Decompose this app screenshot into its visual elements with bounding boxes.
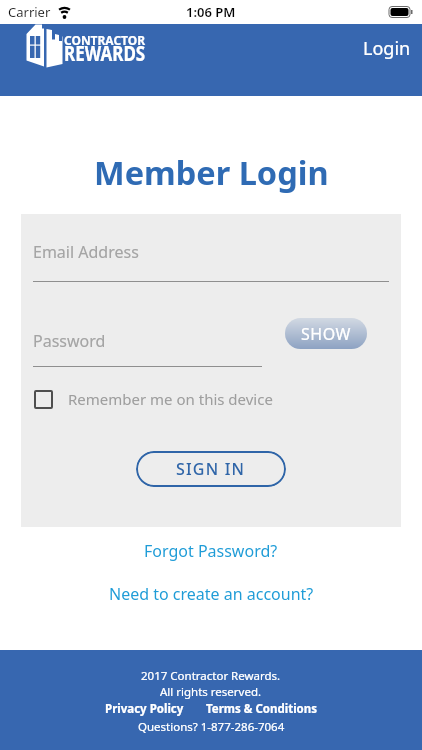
- button[interactable]: Login: [357, 42, 417, 79]
- staticText: 1:06 PM: [186, 3, 236, 21]
- staticText: SIGN IN: [176, 458, 246, 480]
- staticText: SHOW: [301, 323, 351, 345]
- staticText: Remember me on this device: [68, 389, 273, 409]
- button[interactable]: Privacy Policy: [105, 701, 184, 717]
- staticText: Member Login: [94, 150, 329, 194]
- staticText: Carrier: [8, 3, 51, 21]
- staticText: CONTRACTOR: [64, 31, 146, 49]
- button[interactable]: Email Address: [33, 241, 389, 282]
- button[interactable]: SIGN IN: [136, 451, 286, 487]
- button[interactable]: Remember me on this device: [33, 389, 273, 409]
- staticText: Login: [363, 36, 411, 61]
- button[interactable]: Forgot Password?: [144, 540, 278, 562]
- button[interactable]: Password: [33, 330, 106, 352]
- staticText: Email Address: [33, 241, 139, 263]
- staticText: REWARDS: [64, 39, 146, 68]
- button[interactable]: Need to create an account?: [109, 583, 314, 605]
- staticText: Questions? 1-877-286-7064: [138, 719, 285, 735]
- button[interactable]: SHOW: [285, 318, 367, 349]
- button[interactable]: Terms & Conditions: [206, 701, 318, 717]
- staticText: All rights reserved.: [160, 684, 262, 700]
- staticText: 2017 Contractor Rewards.: [141, 668, 281, 684]
